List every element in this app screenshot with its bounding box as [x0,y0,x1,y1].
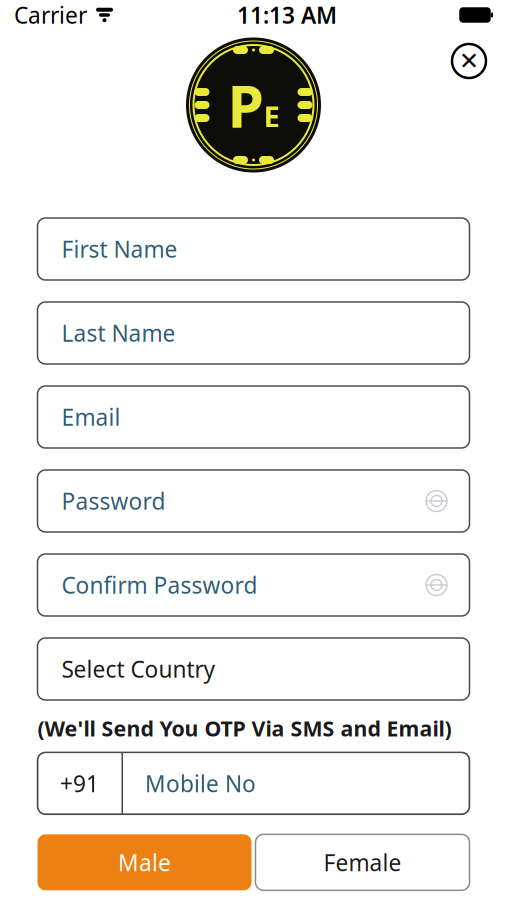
staticText: Male [118,847,171,877]
staticText: Female [323,847,401,877]
button[interactable]: Female [255,834,469,890]
button[interactable]: Confirm Password [37,554,469,616]
staticText: First Name [61,234,177,264]
staticText: 11:13 AM [237,0,337,30]
staticText: Carrier [14,0,87,30]
button[interactable]: Last Name [37,302,469,364]
staticText: (We'll Send You OTP Via SMS and Email) [37,714,451,742]
staticText: Select Country [61,654,215,684]
button[interactable]: Email [37,386,469,448]
button[interactable]: Close [447,39,491,83]
button[interactable]: Select Country [37,638,469,700]
staticText: P [227,66,263,144]
button[interactable]: First Name [37,218,469,280]
staticText: Last Name [61,318,175,348]
staticText: ✕ [459,47,479,75]
staticText: E [263,96,279,135]
staticText: Mobile No [145,768,256,798]
staticText: Confirm Password [61,570,257,600]
button[interactable]: Male [37,834,251,890]
staticText: Password [61,486,165,516]
button[interactable]: Password [37,470,469,532]
staticText: Email [61,402,120,432]
button[interactable]: +91 [37,752,469,814]
staticText: +91 [60,768,99,798]
